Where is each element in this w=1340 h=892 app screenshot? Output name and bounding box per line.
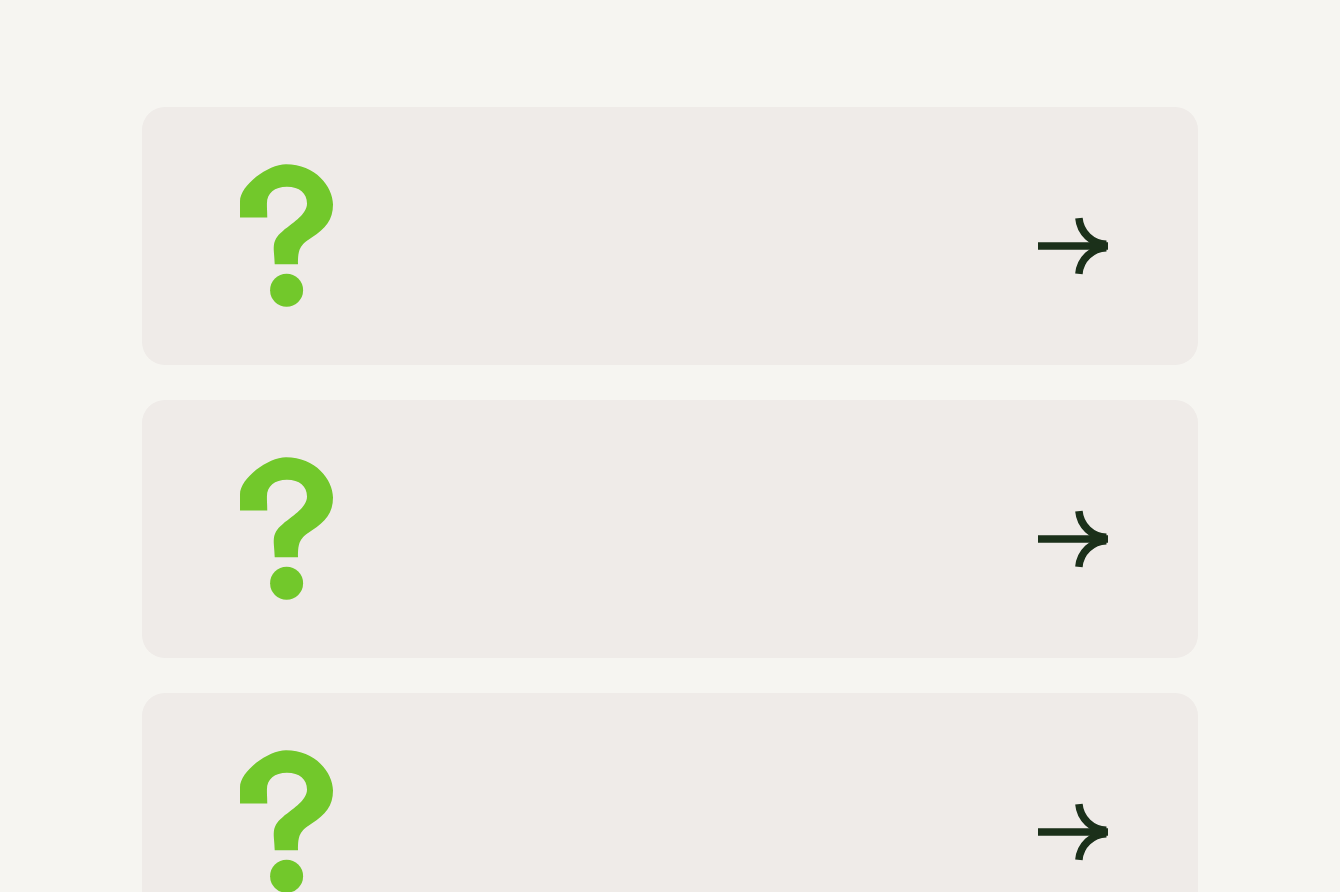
button[interactable]: Open <box>1038 511 1108 567</box>
button[interactable]: Unknown item <box>142 107 1198 365</box>
other: Unknown item <box>240 457 333 599</box>
other: Unknown item <box>240 750 333 892</box>
button[interactable]: Unknown item <box>142 693 1198 892</box>
button[interactable]: Unknown item <box>142 400 1198 658</box>
other: Unknown item <box>240 164 333 306</box>
button[interactable]: Open <box>1038 804 1108 860</box>
button[interactable]: Open <box>1038 218 1108 274</box>
